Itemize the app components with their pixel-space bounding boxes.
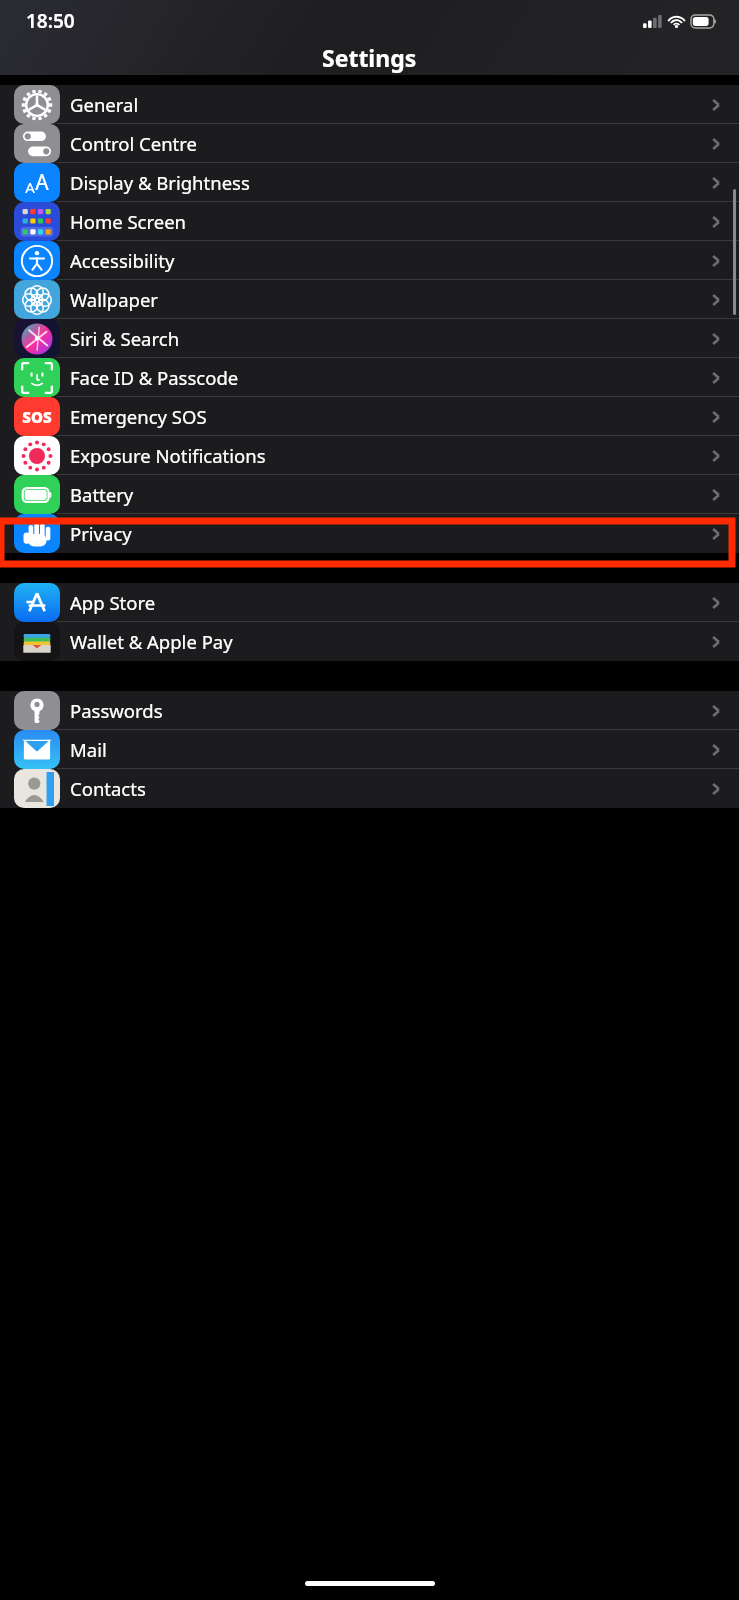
staticText: SOS	[22, 407, 52, 427]
staticText: Wallet & Apple Pay	[70, 629, 707, 654]
staticText: Wallpaper	[70, 287, 707, 312]
button[interactable]: Face ID & Passcode	[0, 358, 739, 397]
button[interactable]: Siri & Search	[0, 319, 739, 358]
button[interactable]: Privacy	[0, 514, 739, 553]
button[interactable]: SOS	[0, 397, 739, 436]
button[interactable]: General	[0, 85, 739, 124]
staticText: Privacy	[70, 521, 707, 546]
button[interactable]: Home Screen	[0, 202, 739, 241]
staticText: Accessibility	[70, 248, 707, 273]
staticText: A	[25, 177, 35, 197]
staticText: Battery	[70, 482, 707, 507]
staticText: Home Screen	[70, 209, 707, 234]
button[interactable]: Control Centre	[0, 124, 739, 163]
button[interactable]: Passwords	[0, 691, 739, 730]
button[interactable]: Accessibility	[0, 241, 739, 280]
staticText: Emergency SOS	[70, 404, 707, 429]
staticText: Mail	[70, 737, 707, 762]
staticText: Control Centre	[70, 131, 707, 156]
staticText: Passwords	[70, 698, 707, 723]
staticText: Siri & Search	[70, 326, 707, 351]
staticText: Exposure Notifications	[70, 443, 707, 468]
staticText: 18:50	[26, 8, 75, 34]
staticText: App Store	[70, 590, 707, 615]
button[interactable]: Mail	[0, 730, 739, 769]
staticText: A	[35, 168, 49, 197]
button[interactable]: Exposure Notifications	[0, 436, 739, 475]
button[interactable]: Wallpaper	[0, 280, 739, 319]
button[interactable]: Wallet & Apple Pay	[0, 622, 739, 661]
button[interactable]: A	[0, 163, 739, 202]
staticText: Face ID & Passcode	[70, 365, 707, 390]
button[interactable]: App Store	[0, 583, 739, 622]
button[interactable]: Battery	[0, 475, 739, 514]
staticText: Settings	[322, 42, 417, 73]
button[interactable]: Contacts	[0, 769, 739, 808]
staticText: Display & Brightness	[70, 170, 707, 195]
staticText: Contacts	[70, 776, 707, 801]
staticText: General	[70, 92, 707, 117]
